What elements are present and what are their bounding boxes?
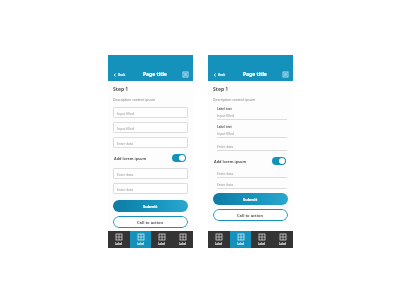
staticText: Label <box>237 242 245 246</box>
button[interactable]: Enter data <box>113 137 188 148</box>
staticText: Input filled <box>117 126 134 130</box>
button[interactable]: Enter data <box>213 171 288 178</box>
button[interactable]: Submit <box>213 193 288 205</box>
staticText: Label text <box>217 125 232 129</box>
staticText: Input filled <box>117 111 134 115</box>
staticText: Label <box>215 242 223 246</box>
button[interactable]: Input filled <box>113 122 188 133</box>
button[interactable]: Back <box>212 72 227 78</box>
staticText: Enter data <box>117 172 134 176</box>
staticText: Input filled <box>217 113 234 117</box>
staticText: Label <box>115 242 123 246</box>
button[interactable]: Label text <box>213 125 288 138</box>
staticText: Enter data <box>117 141 134 145</box>
staticText: Label <box>258 242 266 246</box>
button[interactable]: Label <box>208 231 230 248</box>
staticText: Label text <box>217 107 232 111</box>
staticText: Back <box>218 73 226 77</box>
staticText: Enter data <box>217 171 234 175</box>
button[interactable]: Label <box>108 231 130 248</box>
button[interactable]: Label <box>272 231 293 248</box>
button[interactable]: Back <box>112 72 127 78</box>
staticText: Label <box>158 242 166 246</box>
staticText: Add lorem ipsum <box>114 156 147 161</box>
staticText: Input filled <box>217 131 234 135</box>
button[interactable]: Add lorem ipsum <box>113 152 188 164</box>
staticText: Submit <box>243 197 258 202</box>
button[interactable]: Menu <box>182 71 189 78</box>
staticText: Call to action <box>237 213 264 218</box>
button[interactable]: Label <box>151 231 172 248</box>
staticText: Step 1 <box>113 86 129 93</box>
button[interactable]: Label <box>251 231 272 248</box>
staticText: Label <box>137 242 145 246</box>
staticText: Enter data <box>217 144 234 148</box>
staticText: Page title <box>243 71 267 78</box>
staticText: Description content ipsum <box>213 97 256 102</box>
staticText: Label <box>179 242 187 246</box>
button[interactable]: Menu <box>282 71 289 78</box>
button[interactable]: Submit <box>113 200 188 212</box>
staticText: Description content ipsum <box>113 97 156 102</box>
staticText: Label <box>279 242 287 246</box>
button[interactable]: Call to action <box>213 209 288 221</box>
button[interactable]: Enter data <box>213 144 288 151</box>
button[interactable]: Label text <box>213 107 288 120</box>
staticText: Enter data <box>117 187 134 191</box>
staticText: Call to action <box>137 220 164 225</box>
staticText: Submit <box>143 204 158 209</box>
button[interactable]: Enter data <box>213 182 288 189</box>
button[interactable]: Label <box>130 231 151 248</box>
button[interactable]: Add lorem ipsum <box>213 155 288 167</box>
button[interactable]: Input filled <box>113 107 188 118</box>
staticText: Enter data <box>217 182 234 186</box>
staticText: Back <box>118 73 126 77</box>
button[interactable]: Enter data <box>113 168 188 179</box>
button[interactable]: Call to action <box>113 216 188 228</box>
staticText: Page title <box>143 71 167 78</box>
button[interactable]: Label <box>172 231 193 248</box>
staticText: Add lorem ipsum <box>214 159 247 164</box>
button[interactable]: Label <box>230 231 251 248</box>
button[interactable]: Enter data <box>113 183 188 194</box>
staticText: Step 1 <box>213 86 229 93</box>
